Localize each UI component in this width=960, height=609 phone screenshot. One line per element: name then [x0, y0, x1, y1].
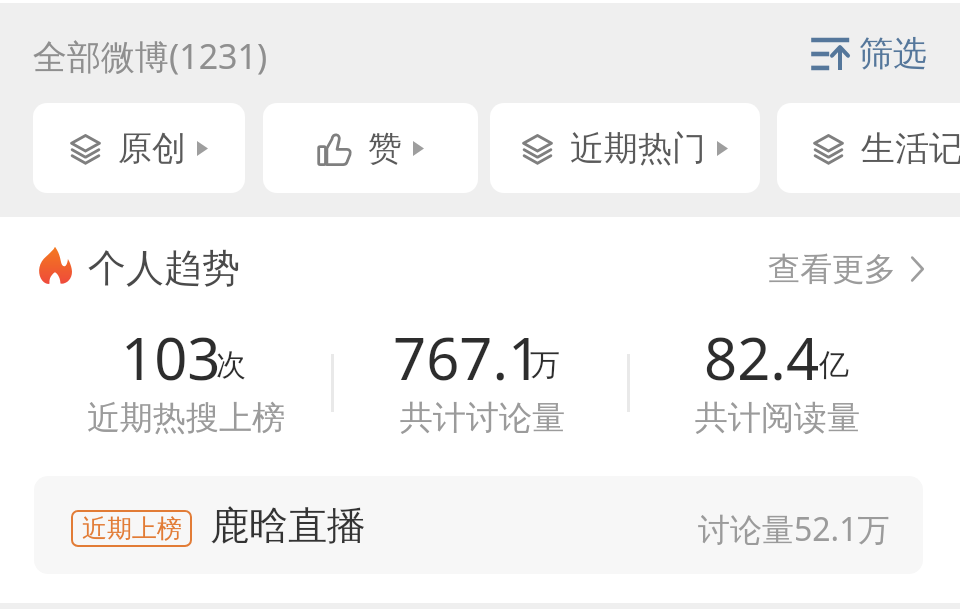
staticText: 讨论量52.1万 — [698, 507, 890, 551]
button[interactable]: 近期上榜 — [34, 476, 923, 574]
button[interactable]: 赞 — [263, 103, 478, 193]
staticText: 近期上榜 — [82, 513, 182, 544]
staticText: 鹿晗直播 — [210, 501, 366, 550]
staticText: 共计讨论量 — [400, 397, 565, 439]
staticText: 原创 — [118, 127, 186, 170]
button[interactable]: Filter — [798, 20, 941, 87]
staticText: 82.4 — [704, 318, 820, 397]
button[interactable]: 生活记录 — [777, 103, 960, 193]
staticText: 查看更多 — [768, 249, 896, 289]
staticText: 全部微博(1231) — [33, 33, 268, 79]
staticText: 赞 — [368, 127, 402, 170]
staticText: 次 — [216, 346, 246, 384]
staticText: 生活记录 — [861, 127, 960, 170]
staticText: 近期热搜上榜 — [87, 397, 285, 439]
staticText: 103 — [121, 318, 221, 397]
staticText: 亿 — [819, 346, 849, 384]
staticText: 筛选 — [859, 32, 927, 75]
staticText: 近期热门 — [570, 127, 706, 170]
staticText: 个人趋势 — [88, 244, 240, 292]
button[interactable]: 近期热门 — [490, 103, 760, 193]
button[interactable]: 查看更多 — [754, 237, 939, 301]
other: Filter — [810, 37, 850, 71]
button[interactable]: 原创 — [33, 103, 245, 193]
staticText: 万 — [530, 346, 560, 384]
staticText: 767.1 — [393, 318, 542, 397]
staticText: 共计阅读量 — [695, 397, 860, 439]
